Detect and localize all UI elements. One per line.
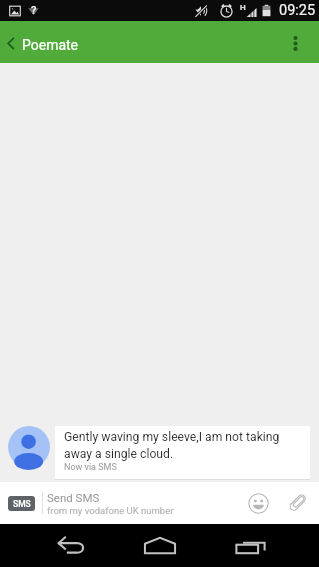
staticText: Send SMS (47, 491, 100, 504)
staticText: H (240, 3, 246, 12)
staticText: Gently waving my sleeve,I am not taking … (64, 430, 302, 461)
staticText: Poemate (22, 37, 79, 53)
staticText: 09:25 (279, 2, 316, 19)
staticText: from my vodafone UK number (47, 505, 174, 516)
button[interactable]: Insert emoji (244, 489, 272, 517)
button[interactable]: More options (271, 21, 319, 63)
button[interactable]: Attach file (285, 490, 311, 516)
button[interactable]: Navigate up (0, 21, 22, 63)
button[interactable]: Gently waving my sleeve,I am not taking … (55, 426, 310, 479)
button[interactable]: SMS (8, 496, 35, 511)
button[interactable]: Back (45, 524, 91, 567)
button[interactable]: Recent apps (228, 524, 274, 567)
button[interactable]: Home (137, 524, 183, 567)
staticText: ? (31, 4, 37, 15)
staticText: Now via SMS (64, 462, 117, 473)
staticText: SMS (13, 499, 31, 509)
